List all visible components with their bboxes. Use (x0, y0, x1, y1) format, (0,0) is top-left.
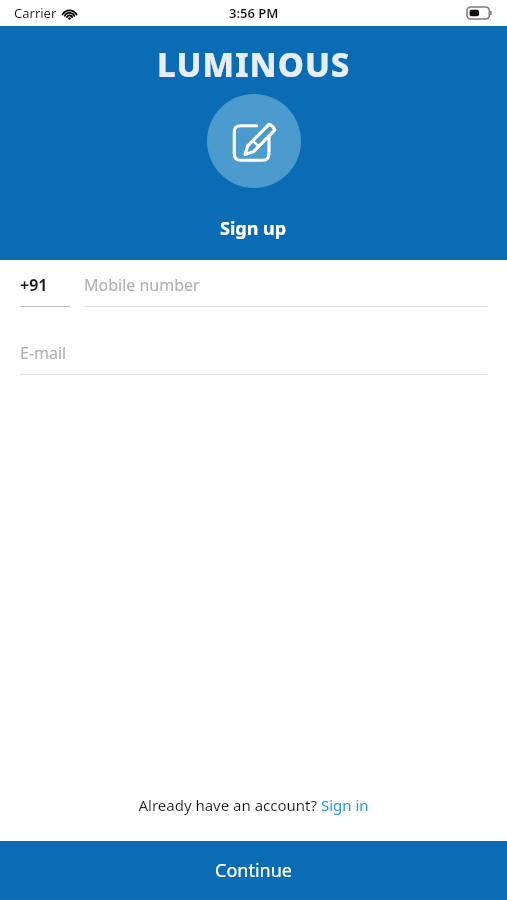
button[interactable]: Sign up with edit (207, 94, 301, 188)
staticText: Carrier (14, 4, 57, 22)
staticText: Sign up (220, 216, 287, 241)
staticText: LUMINOUS (157, 42, 351, 87)
staticText: Mobile number (84, 274, 200, 296)
staticText: 3:56 PM (229, 4, 279, 22)
staticText: Already have an account? Sign in (138, 795, 369, 815)
button[interactable]: Mobile number (84, 274, 487, 307)
button[interactable]: +91 (20, 274, 70, 307)
button[interactable]: E-mail (20, 342, 487, 375)
button[interactable]: Already have an account? Sign in (0, 795, 507, 815)
button[interactable]: Continue (0, 841, 507, 900)
staticText: Continue (215, 858, 292, 883)
staticText: E-mail (20, 342, 67, 364)
staticText: +91 (20, 274, 48, 296)
